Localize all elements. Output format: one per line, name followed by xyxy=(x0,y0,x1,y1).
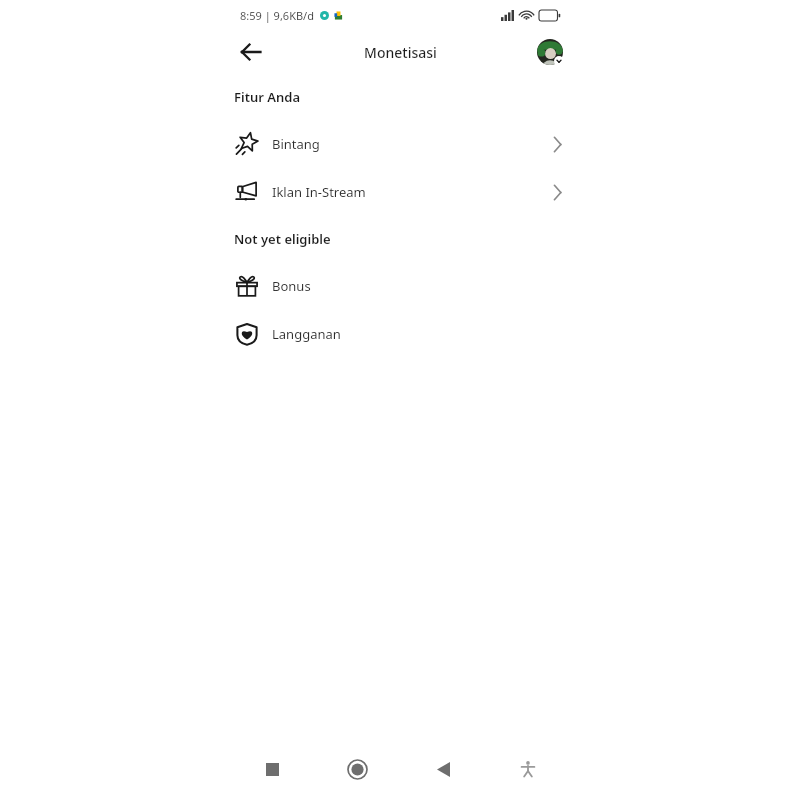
button[interactable]: Iklan In-Stream xyxy=(225,168,575,216)
button[interactable]: Recent apps xyxy=(250,747,294,791)
staticText: Not yet eligible xyxy=(234,230,331,248)
button[interactable]: Langganan xyxy=(225,310,575,358)
button[interactable]: Home xyxy=(335,747,379,791)
button[interactable]: Accessibility xyxy=(506,747,550,791)
staticText: Fitur Anda xyxy=(234,88,301,106)
button[interactable]: Profile xyxy=(535,37,565,67)
staticText: Bintang xyxy=(272,135,320,153)
button[interactable]: Back xyxy=(421,747,465,791)
staticText: 8:59 | 9,6KB/d xyxy=(240,8,314,23)
staticText: Langganan xyxy=(272,325,341,343)
button[interactable]: Back xyxy=(231,32,271,72)
button[interactable]: Bonus xyxy=(225,262,575,310)
button[interactable]: Bintang xyxy=(225,120,575,168)
staticText: Iklan In-Stream xyxy=(272,183,366,201)
staticText: Monetisasi xyxy=(364,43,437,62)
staticText: Bonus xyxy=(272,277,311,295)
